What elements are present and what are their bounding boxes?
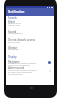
staticText: Sound bbox=[8, 30, 17, 34]
button[interactable] bbox=[6, 46, 54, 51]
staticText: Default tone bbox=[8, 22, 21, 25]
button[interactable]: Display bbox=[8, 55, 17, 58]
staticText: No exceptions bbox=[8, 32, 23, 35]
staticText: Vibrate bbox=[8, 46, 18, 50]
button[interactable] bbox=[6, 20, 54, 27]
staticText: Ringtone bbox=[8, 60, 20, 64]
staticText: Alarm sound bbox=[8, 66, 25, 70]
staticText: Display bbox=[8, 55, 17, 58]
button[interactable] bbox=[6, 38, 54, 43]
staticText: Alerts and reminders bbox=[8, 64, 30, 67]
button[interactable]: Unselected option bbox=[47, 68, 52, 73]
staticText: Sounds bbox=[8, 16, 17, 19]
staticText: No exceptions bbox=[8, 73, 23, 76]
staticText: Sound plays when charging bbox=[8, 69, 37, 72]
staticText: Turned off bbox=[8, 48, 19, 51]
staticText: Silent bbox=[8, 20, 16, 24]
button[interactable] bbox=[6, 66, 54, 75]
staticText: Off for now bbox=[8, 41, 20, 44]
button[interactable] bbox=[6, 60, 54, 67]
button[interactable]: Sounds bbox=[8, 16, 17, 19]
button[interactable]: Notification bbox=[6, 8, 54, 16]
staticText: Do not disturb access bbox=[8, 38, 36, 42]
staticText: Only priority alerts allowed bbox=[8, 62, 36, 65]
staticText: all alerts and reminders bbox=[8, 71, 33, 74]
staticText: Notification bbox=[8, 10, 25, 14]
button[interactable]: Selected option bbox=[47, 60, 52, 65]
button[interactable] bbox=[6, 30, 54, 35]
staticText: Off for now bbox=[8, 24, 20, 27]
